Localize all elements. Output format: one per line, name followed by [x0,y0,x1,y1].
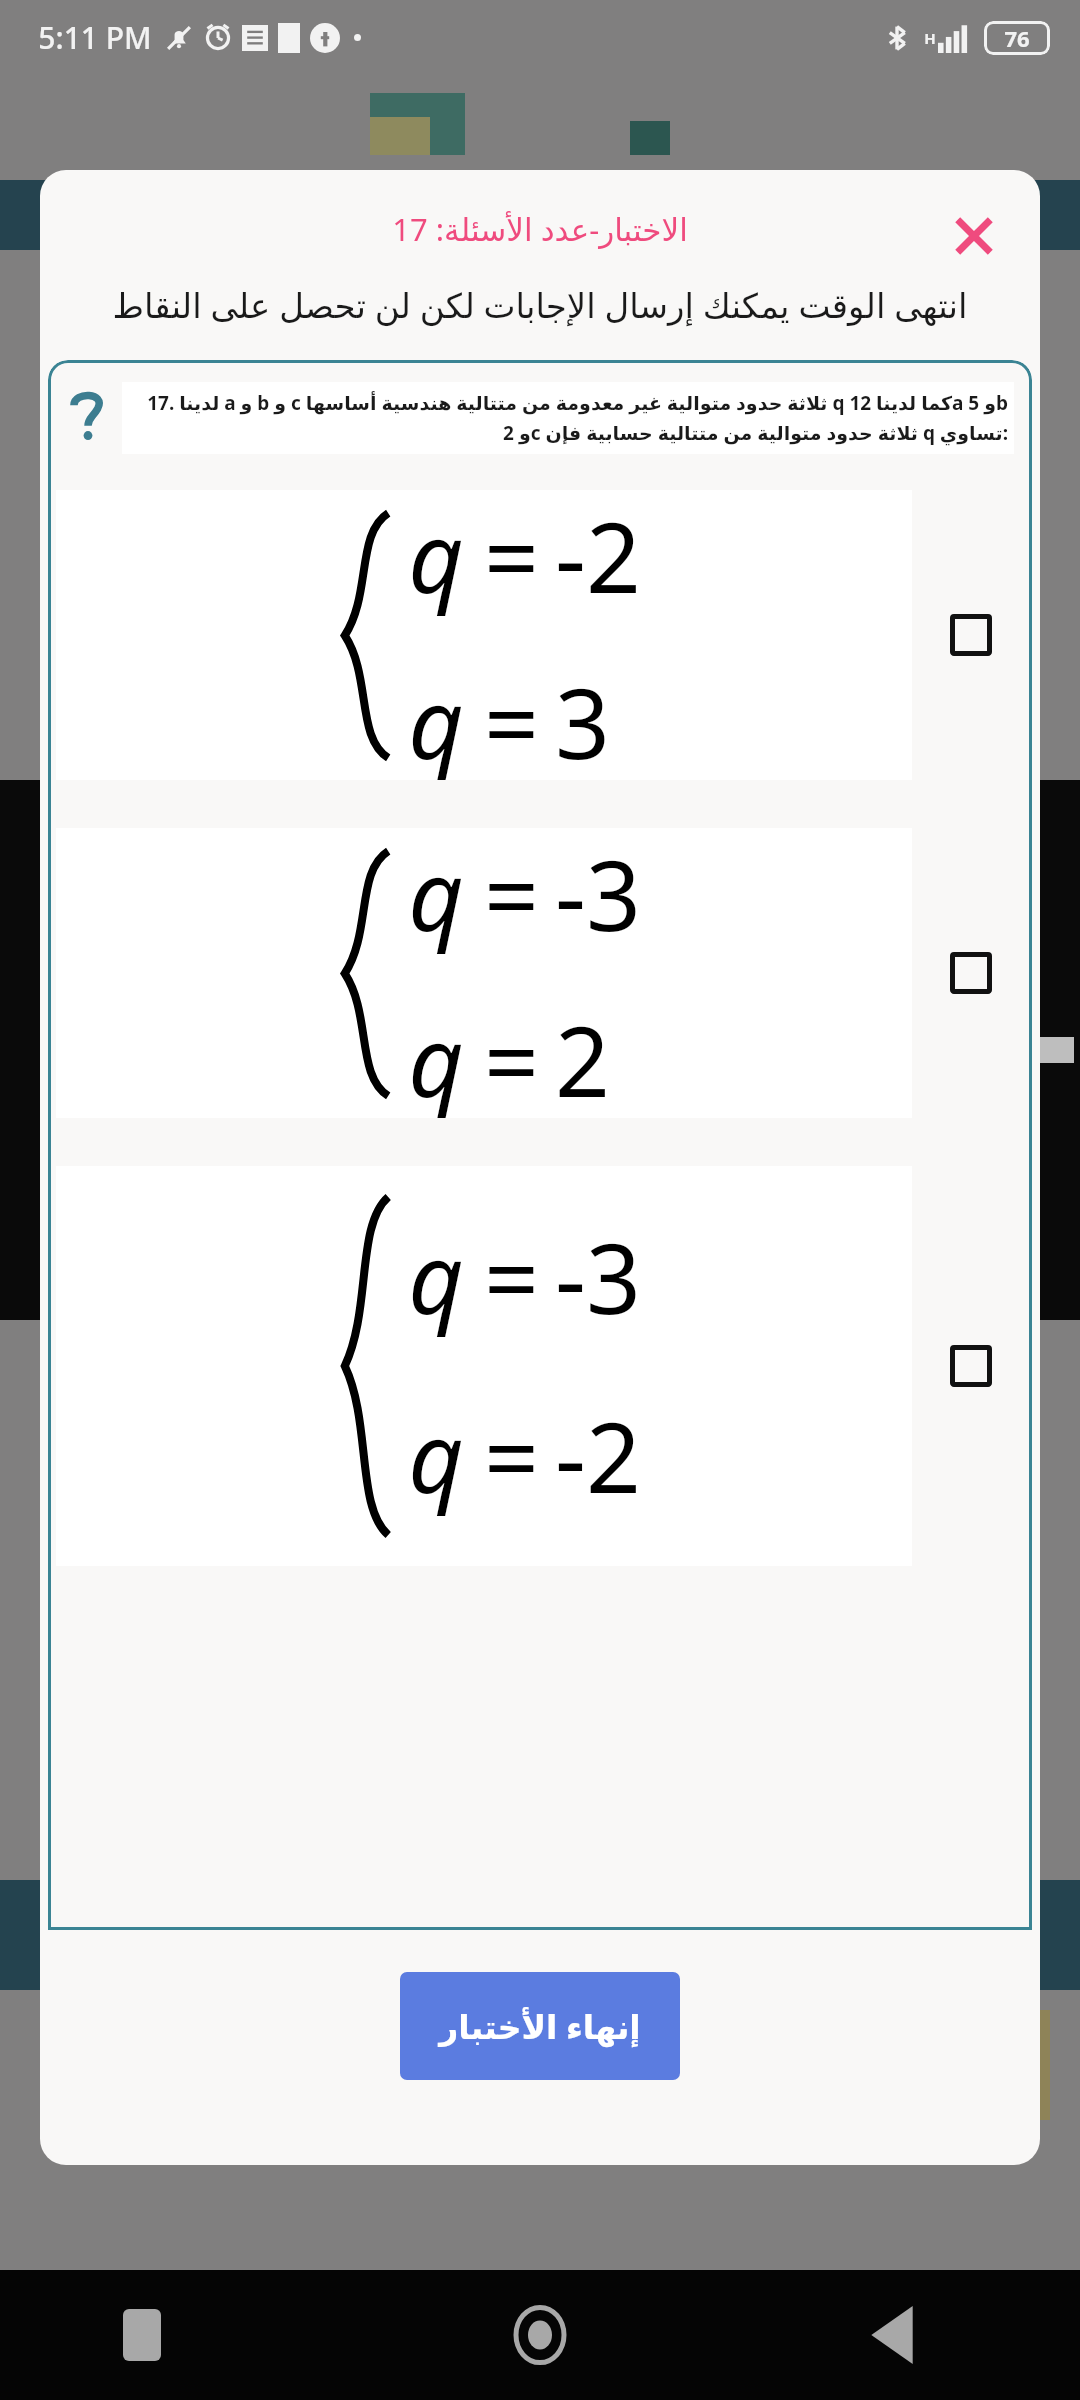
staticText: إنهاء الأختبار [439,2004,641,2049]
button[interactable]: q [52,490,1028,780]
button[interactable]: q [52,828,1028,1118]
button[interactable]: اختيار الإجابة [936,600,1006,670]
staticText: q [408,490,464,621]
button[interactable]: إنهاء الأختبار [400,1972,680,2080]
staticText: H [924,28,936,48]
staticText: q [408,1390,464,1521]
staticText: q [408,1211,464,1342]
staticText: -2 [555,1390,641,1521]
button[interactable]: Back [720,2270,1080,2400]
button[interactable]: Recent apps [0,2270,360,2400]
button[interactable]: إغلاق [946,208,1002,264]
staticText: -3 [555,828,641,959]
staticText: -3 [555,1211,641,1342]
staticText: انتهى الوقت يمكنك إرسال الإجابات لكن لن … [62,282,1018,328]
staticText: 3 [555,656,610,780]
staticText: = [484,994,539,1118]
staticText: q [408,656,464,780]
staticText: q [408,828,464,959]
button[interactable]: Home [360,2270,720,2400]
staticText: q [408,994,464,1118]
staticText: و 2c ثلاثة حدود متوالية من متتالية حسابي… [128,420,1008,446]
staticText: = [484,490,539,621]
staticText: = [484,656,539,780]
staticText: 17. لدينا a و b و c ثلاثة حدود متوالية غ… [128,390,1008,416]
staticText: 76 [1004,23,1030,53]
staticText: -2 [555,490,641,621]
staticText: 5:11 PM [38,17,152,58]
button[interactable]: اختيار الإجابة [936,1331,1006,1401]
button[interactable]: q [52,1166,1028,1566]
staticText: 2 [555,994,610,1118]
button[interactable]: اختيار الإجابة [936,938,1006,1008]
staticText: = [484,1390,539,1521]
staticText: = [484,1211,539,1342]
staticText: الاختبار-عدد الأسئلة: 17 [392,208,688,250]
staticText: = [484,828,539,959]
